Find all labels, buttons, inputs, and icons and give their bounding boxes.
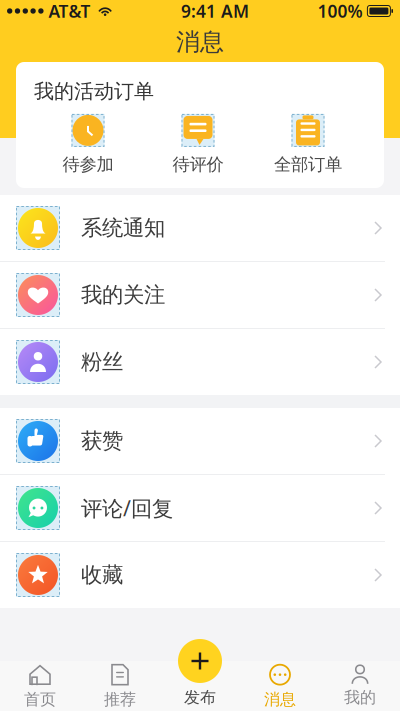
staticText: 我的活动订单 [34,79,154,104]
button[interactable]: 待参加 [51,117,125,173]
staticText: 9:41 AM [181,0,249,22]
staticText: 首页 [24,690,56,709]
button[interactable]: 推荐 [80,661,160,711]
staticText: 100% [317,0,362,22]
button[interactable]: 发布 [160,661,240,711]
staticText: 系统通知 [81,215,165,241]
staticText: 发布 [184,688,216,707]
staticText: 待评价 [172,154,223,175]
button[interactable]: 全部订单 [271,117,345,173]
button[interactable]: 首页 [0,661,80,711]
button[interactable]: 发布 [177,638,223,684]
button[interactable]: 系统通知 [0,195,400,261]
button[interactable]: 粉丝 [0,329,400,395]
staticText: 评论/回复 [81,494,173,522]
button[interactable]: 我的关注 [0,262,400,328]
button[interactable]: 收藏 [0,542,400,608]
staticText: 消息 [264,690,296,709]
staticText: 我的关注 [81,282,165,308]
button[interactable]: 消息 [240,661,320,711]
button[interactable]: 待评价 [161,117,235,173]
button[interactable]: 我的 [320,661,400,711]
staticText: 消息 [176,27,224,57]
staticText: 粉丝 [81,349,123,375]
staticText: 待参加 [62,154,113,175]
staticText: 收藏 [81,562,123,588]
staticText: 获赞 [81,428,123,454]
staticText: 我的 [344,688,376,707]
button[interactable]: 评论/回复 [0,475,400,541]
staticText: 推荐 [104,690,136,709]
button[interactable]: 获赞 [0,408,400,474]
staticText: 全部订单 [274,154,342,175]
staticText: AT&T [44,0,91,22]
